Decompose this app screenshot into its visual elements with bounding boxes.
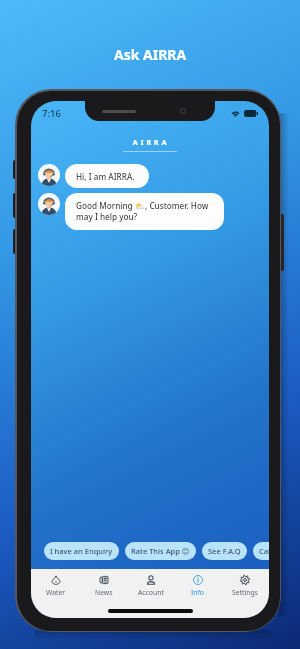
button[interactable]: Account bbox=[127, 569, 174, 597]
button[interactable]: Rate This App 😊 bbox=[125, 542, 196, 560]
staticText: Account bbox=[138, 588, 164, 597]
button[interactable]: Info bbox=[174, 569, 221, 597]
button[interactable]: Call Us bbox=[253, 542, 269, 560]
button[interactable]: Hi, I am AIRRA. bbox=[65, 164, 149, 188]
button[interactable]: Settings bbox=[221, 569, 268, 597]
button[interactable]: News bbox=[80, 569, 127, 597]
staticText: I have an Enquiry bbox=[50, 546, 113, 556]
staticText: Rate This App 😊 bbox=[131, 546, 190, 556]
button[interactable]: I have an Enquiry bbox=[44, 542, 119, 560]
button[interactable]: Good Morning ⛅, Customer. How may I help… bbox=[65, 193, 224, 230]
staticText: Good Morning ⛅, Customer. How may I help… bbox=[76, 200, 213, 223]
staticText: Hi, I am AIRRA. bbox=[76, 171, 135, 182]
staticText: See F.A.Q bbox=[208, 546, 241, 556]
button[interactable]: See F.A.Q bbox=[202, 542, 247, 560]
staticText: Water bbox=[46, 588, 66, 597]
staticText: Call Us bbox=[259, 546, 269, 556]
staticText: News bbox=[95, 588, 113, 597]
staticText: Settings bbox=[232, 588, 258, 597]
button[interactable]: Water bbox=[32, 569, 80, 597]
staticText: 7:16 bbox=[42, 107, 61, 120]
staticText: Ask AIRRA bbox=[114, 45, 187, 64]
staticText: Info bbox=[191, 588, 204, 597]
staticText: A I R R A bbox=[31, 138, 269, 148]
